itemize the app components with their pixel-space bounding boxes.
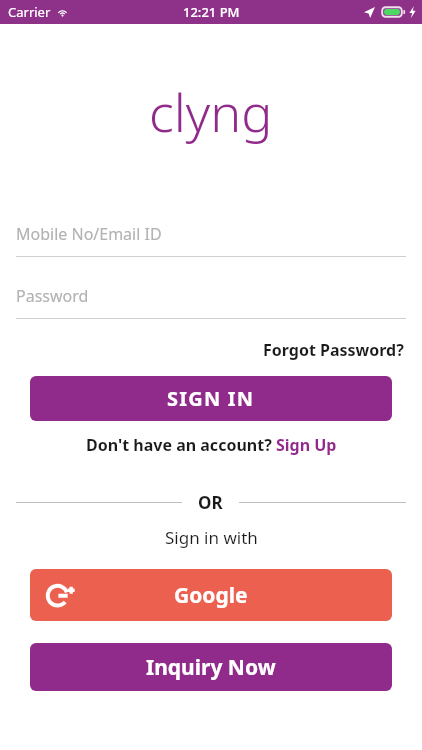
staticText: Sign Up [276,434,337,456]
staticText: Google [174,581,248,610]
button[interactable]: Forgot Password? [261,337,406,363]
button[interactable]: Password [16,285,406,319]
button[interactable]: Google [30,569,392,621]
staticText: Inquiry Now [146,653,276,682]
staticText: Carrier [8,3,51,21]
staticText: OR [198,491,223,514]
button[interactable]: SIGN IN [30,376,392,421]
staticText: Password [16,285,89,307]
staticText: Mobile No/Email ID [16,223,162,245]
staticText: Sign in with [165,526,258,549]
staticText: 12:21 PM [183,3,240,21]
other: Sign in with Google [44,578,78,612]
staticText: Forgot Password? [263,339,404,361]
staticText: clyng [149,76,273,147]
button[interactable]: Sign Up [276,434,337,456]
staticText: SIGN IN [167,385,255,412]
button[interactable]: Mobile No/Email ID [16,223,406,257]
button[interactable]: Inquiry Now [30,643,392,691]
staticText: Don't have an account? [86,434,276,456]
